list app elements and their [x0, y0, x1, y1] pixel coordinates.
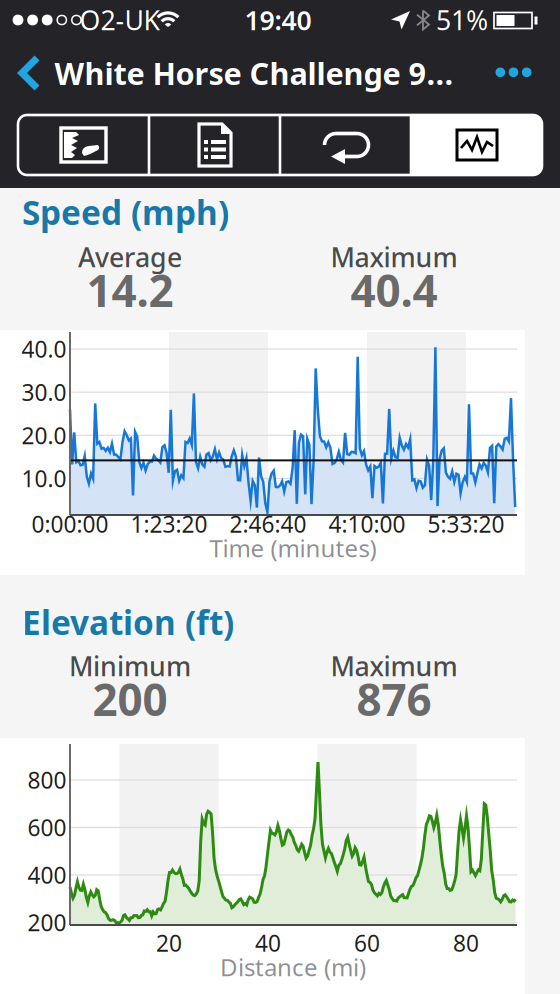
staticText: 40 — [255, 928, 281, 958]
staticText: 0:00:00 — [31, 509, 108, 539]
staticText: Elevation (ft) — [22, 600, 234, 644]
button[interactable]: Details — [149, 115, 280, 175]
staticText: 1:23:20 — [130, 509, 207, 539]
staticText: Minimum — [69, 648, 191, 684]
staticText: 30.0 — [21, 377, 66, 407]
staticText: White Horse Challenge 9... — [54, 53, 453, 93]
staticText: 400 — [27, 860, 66, 890]
button[interactable]: Map — [18, 115, 149, 175]
staticText: Speed (mph) — [22, 190, 229, 234]
staticText: 600 — [27, 812, 66, 842]
staticText: 5:33:20 — [427, 509, 504, 539]
staticText: 51% — [436, 2, 488, 38]
staticText: 10.0 — [21, 463, 66, 494]
staticText: 14.2 — [86, 261, 173, 319]
staticText: Time (minutes) — [209, 532, 376, 564]
staticText: 200 — [27, 907, 66, 937]
button[interactable]: Back — [0, 40, 60, 104]
staticText: 20 — [156, 928, 182, 958]
staticText: 19:40 — [244, 2, 311, 38]
staticText: Maximum — [330, 239, 457, 275]
staticText: 200 — [92, 670, 167, 728]
staticText: Average — [78, 239, 182, 275]
staticText: 80 — [453, 928, 479, 958]
staticText: 4:10:00 — [328, 509, 405, 539]
staticText: 40.0 — [21, 334, 66, 364]
staticText: 20.0 — [21, 420, 66, 450]
button[interactable]: More — [0, 40, 60, 104]
staticText: 876 — [356, 670, 431, 728]
staticText: 60 — [354, 928, 380, 958]
staticText: Maximum — [330, 648, 457, 684]
staticText: 40.4 — [350, 261, 437, 319]
staticText: 800 — [27, 765, 66, 795]
button[interactable]: Charts — [411, 115, 542, 175]
button[interactable]: Laps — [280, 115, 411, 175]
staticText: 2:46:40 — [229, 509, 306, 539]
staticText: O2-UK — [79, 2, 160, 38]
staticText: Distance (mi) — [220, 951, 366, 983]
